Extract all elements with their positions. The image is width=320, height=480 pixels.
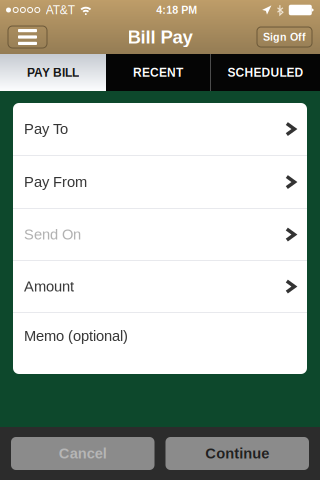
staticText: AT&T — [46, 3, 75, 17]
staticText: 4:18 PM — [156, 4, 197, 16]
button[interactable]: Memo (optional) — [13, 313, 307, 359]
button[interactable]: Continue — [165, 437, 309, 470]
button[interactable]: Menu — [8, 26, 47, 48]
button[interactable]: Cancel — [11, 437, 154, 470]
button[interactable]: PAY BILL — [0, 54, 106, 91]
staticText: PAY BILL — [27, 66, 79, 79]
staticText: SCHEDULED — [227, 66, 303, 79]
button[interactable]: Pay To — [13, 103, 307, 155]
staticText: Continue — [205, 445, 269, 462]
staticText: Amount — [24, 278, 74, 295]
staticText: Memo (optional) — [24, 328, 128, 344]
button[interactable]: SCHEDULED — [211, 54, 320, 91]
staticText: Cancel — [59, 445, 107, 462]
staticText: Sign Off — [263, 31, 306, 43]
button[interactable]: Sign Off — [257, 27, 312, 47]
staticText: Bill Pay — [127, 27, 192, 47]
button[interactable]: Amount — [13, 261, 307, 312]
staticText: RECENT — [133, 66, 183, 79]
staticText: Pay To — [24, 121, 68, 137]
button[interactable]: Pay From — [13, 156, 307, 208]
button[interactable]: RECENT — [106, 54, 210, 91]
staticText: Send On — [24, 226, 81, 243]
staticText: Pay From — [24, 174, 87, 190]
button[interactable]: Send On — [13, 209, 307, 260]
